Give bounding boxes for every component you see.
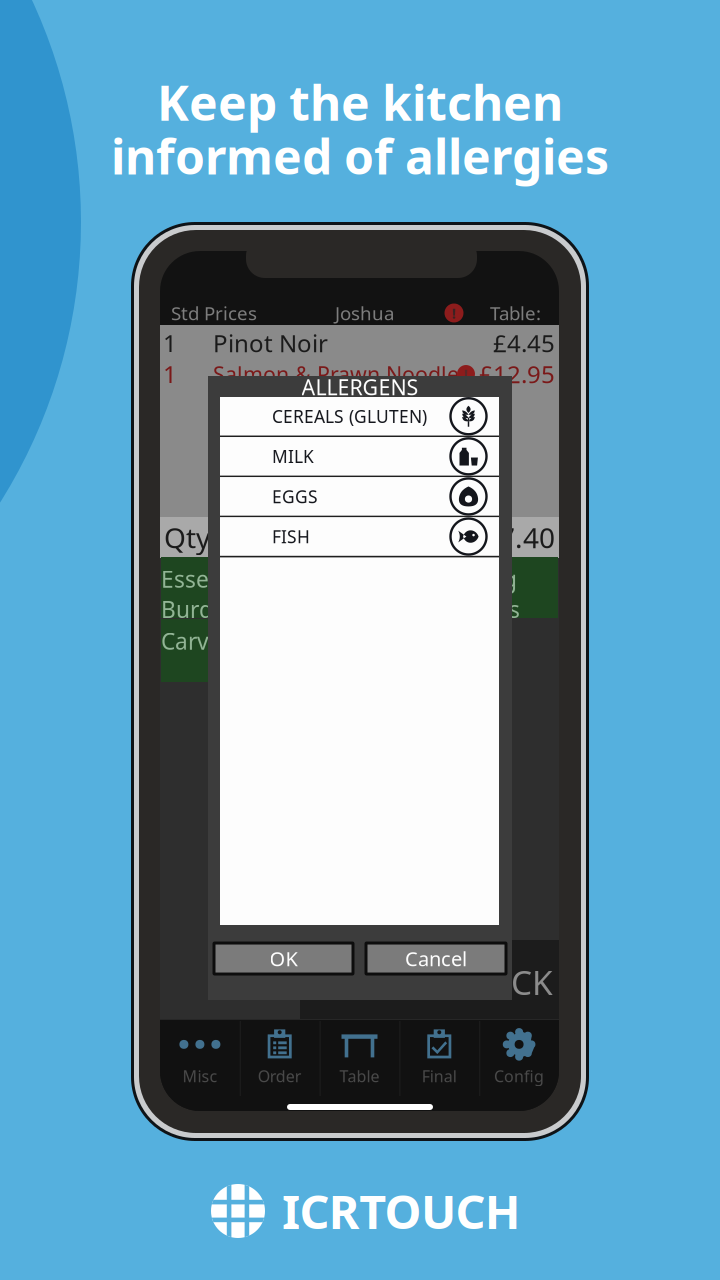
staticText: OK [269,945,297,972]
staticText: Order [258,1065,302,1087]
staticText: informed of allergies [111,124,609,188]
button[interactable]: Essex Burger [161,557,292,618]
button[interactable]: Mixed Grill [294,557,425,618]
staticText: 1 [163,358,177,390]
staticText: Std Prices [171,301,257,325]
button[interactable]: OK [214,943,353,974]
button[interactable]: CEREALS (GLUTEN) [220,397,499,435]
staticText: Pudding Desserts [427,564,520,624]
button[interactable]: Order [240,1019,320,1096]
staticText: Final [422,1065,457,1087]
button[interactable]: Pudding Desserts [427,557,558,618]
staticText: Salmon & Prawn Noodles [213,360,469,388]
staticText: EGGS [272,485,318,508]
staticText: ALLERGENS [301,373,418,401]
staticText: ! [464,364,468,384]
staticText: 7.40 [499,519,555,556]
staticText: 1 [163,327,177,359]
button[interactable]: Config [479,1019,559,1096]
staticText: CEREALS (GLUTEN) [272,405,427,428]
staticText: Config [494,1065,544,1087]
staticText: MILK [272,445,314,468]
staticText: BACK [468,960,553,1004]
button[interactable]: EGGS [220,477,499,516]
staticText: Essex Burger [161,564,235,624]
staticText: Table [339,1065,379,1087]
button[interactable]: MILK [220,437,499,476]
button[interactable]: Cancel [366,943,506,974]
staticText: £4.45 [493,327,555,359]
staticText: Keep the kitchen [157,70,563,134]
staticText: Misc [182,1065,217,1087]
staticText: Cancel [405,945,467,972]
staticText: £12.95 [479,358,555,390]
button[interactable]: FISH [220,517,499,556]
staticText: Joshua [335,301,394,325]
staticText: Pinot Noir [213,327,328,359]
button[interactable]: Misc [160,1019,240,1096]
button[interactable]: Table [320,1019,399,1096]
staticText: ! [452,303,456,323]
button[interactable]: Final [399,1019,479,1096]
button[interactable]: Carvery [161,619,292,682]
staticText: FISH [272,525,310,548]
staticText: ICRTOUCH [282,1180,521,1242]
staticText: Carvery [161,626,243,656]
staticText: Table: [490,301,541,325]
button[interactable]: BACK [300,940,559,1019]
staticText: Qty [164,519,210,556]
